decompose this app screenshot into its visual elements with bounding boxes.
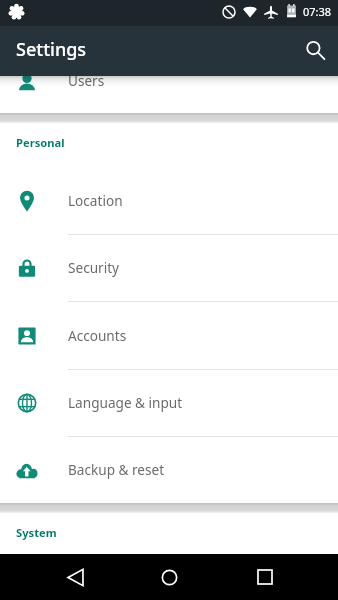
staticText: 07:38 (303, 4, 332, 19)
staticText: Personal (16, 135, 65, 150)
button[interactable]: Security (0, 234, 338, 301)
button[interactable]: Recents (242, 554, 288, 600)
button[interactable]: Users (0, 76, 338, 113)
staticText: Language & input (68, 393, 183, 412)
staticText: System (16, 525, 57, 540)
staticText: Accounts (68, 326, 127, 345)
button[interactable]: Backup & reset (0, 436, 338, 503)
button[interactable]: Accounts (0, 302, 338, 369)
staticText: Location (68, 191, 123, 210)
staticText: Settings (16, 37, 87, 62)
button[interactable]: Home (146, 554, 192, 600)
staticText: Security (68, 258, 120, 277)
staticText: Users (68, 76, 105, 90)
button[interactable]: Search (294, 30, 336, 72)
staticText: Backup & reset (68, 460, 165, 479)
button[interactable]: Location (0, 167, 338, 234)
button[interactable]: Back (50, 554, 96, 600)
button[interactable]: Language & input (0, 369, 338, 436)
